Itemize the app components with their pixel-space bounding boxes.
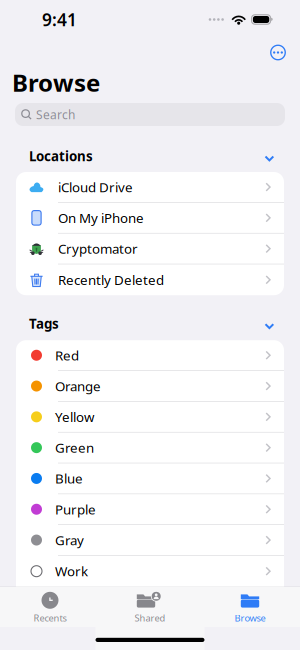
staticText: Locations xyxy=(29,147,93,165)
button[interactable]: Search xyxy=(15,103,285,126)
staticText: iCloud Drive xyxy=(58,178,133,196)
button[interactable]: On My iPhone xyxy=(16,203,284,233)
staticText: Red xyxy=(55,346,79,364)
button[interactable]: Purple xyxy=(16,494,284,524)
staticText: Search xyxy=(36,106,75,122)
button[interactable]: Orange xyxy=(16,371,284,401)
staticText: Shared xyxy=(134,612,165,624)
staticText: Blue xyxy=(55,470,83,487)
staticText: Green xyxy=(55,439,94,456)
staticText: Gray xyxy=(55,531,84,549)
button[interactable]: Red xyxy=(16,340,284,370)
button[interactable]: Browse xyxy=(200,586,300,628)
button[interactable]: Work xyxy=(16,556,284,587)
button[interactable]: Green xyxy=(16,433,284,463)
staticText: On My iPhone xyxy=(58,209,144,227)
button[interactable]: Recents xyxy=(0,586,100,628)
button[interactable]: More xyxy=(266,40,290,64)
staticText: Orange xyxy=(55,377,101,395)
button[interactable]: Collapse Locations xyxy=(264,150,274,162)
staticText: Work xyxy=(55,562,88,580)
staticText: Recents xyxy=(33,612,66,624)
button[interactable]: iCloud Drive xyxy=(16,172,284,202)
staticText: Purple xyxy=(55,500,96,518)
button[interactable]: Gray xyxy=(16,525,284,555)
button[interactable]: Yellow xyxy=(16,402,284,432)
button[interactable]: Blue xyxy=(16,463,284,493)
staticText: Tags xyxy=(29,315,59,332)
staticText: Browse xyxy=(234,612,265,624)
button[interactable]: Recently Deleted xyxy=(16,264,284,295)
staticText: Recently Deleted xyxy=(58,271,164,289)
button[interactable]: Cryptomator xyxy=(16,234,284,264)
staticText: 9:41 xyxy=(42,8,77,31)
staticText: Yellow xyxy=(55,408,94,426)
button[interactable]: Shared xyxy=(100,586,200,628)
button[interactable]: Collapse Tags xyxy=(264,318,274,329)
staticText: Browse xyxy=(12,67,100,98)
staticText: Cryptomator xyxy=(58,240,138,257)
